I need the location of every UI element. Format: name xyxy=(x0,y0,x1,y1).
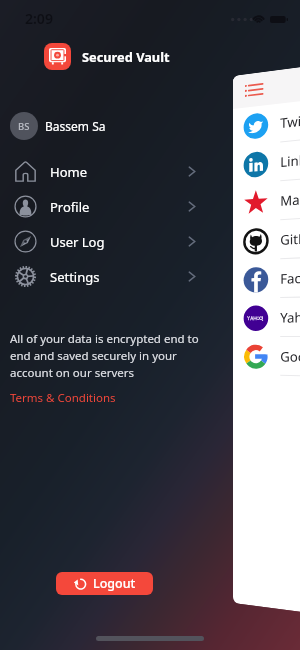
staticText: Google xyxy=(280,347,300,366)
button[interactable]: Menu xyxy=(245,79,263,101)
button[interactable]: Secured Vault xyxy=(44,43,170,70)
button[interactable]: Macys xyxy=(233,160,300,223)
staticText: Profile xyxy=(50,198,90,216)
staticText: Settings xyxy=(50,268,100,286)
button[interactable]: Twitter xyxy=(233,72,300,147)
staticText: Secured Vault xyxy=(82,48,170,65)
button[interactable]: Yahoo xyxy=(233,292,300,337)
staticText: All of your data is encrypted end to end… xyxy=(10,331,199,381)
button[interactable]: BS xyxy=(10,112,106,140)
staticText: GitHub xyxy=(280,228,300,249)
button[interactable]: Logout xyxy=(56,572,153,595)
button[interactable]: Facebook xyxy=(233,248,300,299)
button[interactable]: Terms & Conditions xyxy=(10,390,116,406)
staticText: Logout xyxy=(93,575,136,592)
button[interactable]: User Log xyxy=(0,224,300,259)
staticText: User Log xyxy=(50,233,105,251)
staticText: Home xyxy=(50,163,87,181)
button[interactable]: LinkedIn xyxy=(233,116,300,185)
staticText: Bassem Sa xyxy=(45,118,106,134)
staticText: Facebook xyxy=(280,267,300,288)
staticText: Yahoo xyxy=(280,308,300,327)
button[interactable]: Google xyxy=(233,337,300,381)
button[interactable]: Settings xyxy=(0,259,300,294)
staticText: LinkedIn xyxy=(280,148,300,171)
button[interactable]: Home xyxy=(0,154,300,189)
staticText: 2:09 xyxy=(25,9,53,28)
staticText: BS xyxy=(18,120,30,133)
staticText: Twitter xyxy=(280,109,300,132)
button[interactable]: GitHub xyxy=(233,204,300,261)
button[interactable]: Profile xyxy=(0,189,300,224)
staticText: Macys xyxy=(280,189,300,210)
